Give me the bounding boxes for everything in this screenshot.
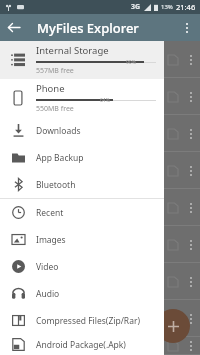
staticText: 21:46	[176, 2, 196, 12]
button[interactable]: Phone	[0, 79, 164, 117]
staticText: 557MB free	[36, 66, 74, 76]
button[interactable]: Add	[156, 309, 190, 343]
staticText: Downloads	[36, 125, 81, 137]
staticText: Images	[36, 234, 66, 246]
button[interactable]: Recent	[0, 199, 164, 226]
staticText: Android Package(.Apk)	[36, 339, 126, 351]
staticText: 3G	[131, 2, 141, 12]
staticText: Recent	[36, 207, 64, 219]
staticText: 90%	[126, 59, 136, 65]
staticText: 550MB free	[36, 104, 74, 114]
staticText: 13%	[161, 3, 173, 11]
button[interactable]: App Backup	[0, 144, 164, 171]
staticText: Internal Storage	[36, 44, 109, 57]
staticText: Compressed Files(Zip/Rar)	[36, 315, 140, 327]
button[interactable]: More options	[173, 14, 200, 41]
button[interactable]: Images	[0, 226, 164, 253]
staticText: MyFiles Explorer	[37, 19, 173, 37]
staticText: Phone	[36, 82, 65, 95]
button[interactable]: Internal Storage	[0, 41, 164, 79]
button[interactable]: Android Package(.Apk)	[0, 334, 164, 355]
button[interactable]: Bluetooth	[0, 171, 164, 198]
button[interactable]: Video	[0, 253, 164, 280]
staticText: Video	[36, 261, 59, 273]
button[interactable]: Compressed Files(Zip/Rar)	[0, 307, 164, 334]
button[interactable]: Audio	[0, 280, 164, 307]
button[interactable]: Back	[0, 14, 27, 41]
staticText: App Backup	[36, 152, 84, 164]
staticText: 64%	[100, 97, 110, 103]
staticText: Bluetooth	[36, 179, 76, 191]
button[interactable]: Downloads	[0, 117, 164, 144]
staticText: Audio	[36, 288, 60, 300]
